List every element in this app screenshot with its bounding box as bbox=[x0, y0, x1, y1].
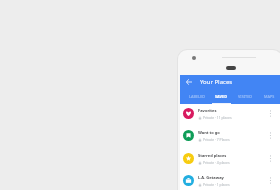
staticText: Private · 11 places bbox=[203, 115, 232, 120]
button[interactable]: SAVED bbox=[209, 88, 233, 104]
button[interactable]: More options bbox=[263, 173, 277, 187]
staticText: MAPS bbox=[264, 94, 275, 99]
staticText: Starred places bbox=[198, 153, 227, 158]
button[interactable]: Want to go bbox=[180, 124, 280, 146]
staticText: Private · 7 Places bbox=[203, 137, 230, 142]
staticText: Want to go bbox=[198, 130, 220, 135]
button[interactable]: More options bbox=[263, 128, 277, 142]
button[interactable]: Favorites bbox=[180, 102, 280, 124]
button[interactable]: Back bbox=[182, 75, 195, 88]
staticText: LABELED bbox=[189, 94, 206, 99]
staticText: Private · 1 places bbox=[203, 182, 230, 187]
button[interactable]: More options bbox=[263, 151, 277, 165]
button[interactable]: Starred places bbox=[180, 147, 280, 169]
staticText: VISITED bbox=[238, 94, 253, 99]
button[interactable]: L.A. Getaway bbox=[180, 169, 280, 190]
staticText: Private · 4 places bbox=[203, 160, 230, 165]
staticText: L.A. Getaway bbox=[198, 175, 224, 180]
button[interactable]: MAPS bbox=[257, 88, 280, 104]
staticText: Favorites bbox=[198, 108, 217, 113]
button[interactable]: VISITED bbox=[233, 88, 257, 104]
button[interactable]: More options bbox=[263, 106, 277, 120]
button[interactable]: LABELED bbox=[185, 88, 209, 104]
staticText: SAVED bbox=[215, 94, 227, 99]
staticText: Your Places bbox=[200, 78, 233, 86]
